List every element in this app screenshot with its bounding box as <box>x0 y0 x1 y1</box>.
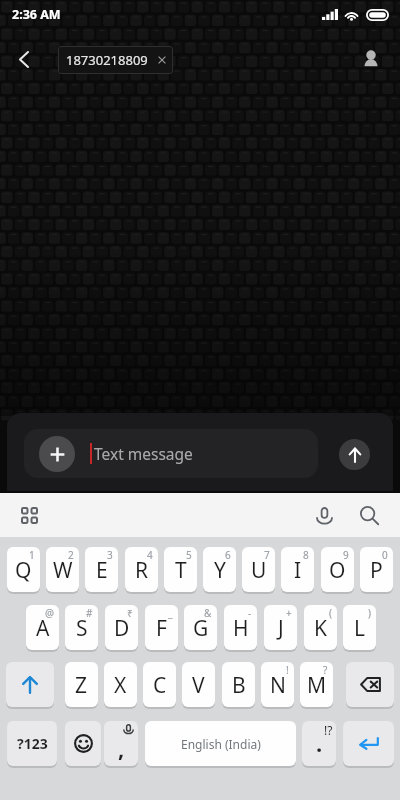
button[interactable]: H <box>224 605 257 650</box>
button[interactable]: ?123 <box>7 721 57 766</box>
staticText: X <box>114 671 127 700</box>
staticText: # <box>86 606 93 620</box>
staticText: N <box>270 671 286 700</box>
button[interactable]: E <box>85 547 118 592</box>
staticText: , <box>118 733 125 763</box>
staticText: ( <box>329 606 332 620</box>
staticText: @ <box>45 606 54 620</box>
button[interactable] <box>65 721 101 766</box>
other: Emoji <box>65 721 101 768</box>
staticText: !? <box>324 722 333 738</box>
staticText: F <box>156 614 167 643</box>
staticText: ) <box>368 606 371 620</box>
button[interactable]: L <box>343 605 376 650</box>
button[interactable]: P <box>360 547 393 592</box>
button[interactable]: F <box>145 605 178 650</box>
button[interactable]: I <box>281 547 314 592</box>
staticText: 5 <box>186 548 192 562</box>
staticText: I <box>294 556 302 585</box>
staticText: S <box>76 614 88 643</box>
staticText: 7 <box>264 548 270 562</box>
staticText: ! <box>286 663 289 677</box>
staticText: M <box>307 671 327 700</box>
button[interactable]: K <box>304 605 337 650</box>
staticText: . <box>316 728 323 758</box>
button[interactable]: O <box>321 547 354 592</box>
staticText: 2:36 AM <box>12 6 61 23</box>
button[interactable]: , <box>104 721 138 766</box>
button[interactable] <box>6 662 54 707</box>
button[interactable]: S <box>65 605 98 650</box>
staticText: K <box>314 614 327 643</box>
button[interactable]: B <box>222 662 255 707</box>
button[interactable]: R <box>125 547 158 592</box>
staticText: G <box>193 614 209 643</box>
button[interactable]: 18730218809 <box>58 46 173 74</box>
staticText: 18730218809 <box>66 51 148 69</box>
staticText: A <box>36 614 50 643</box>
staticText: ?123 <box>17 734 48 753</box>
button[interactable]: Contact details <box>353 41 389 77</box>
staticText: P <box>370 556 383 585</box>
staticText: English (India) <box>181 736 261 752</box>
staticText: ₹ <box>127 606 133 620</box>
button[interactable]: Search <box>352 498 386 532</box>
staticText: 1 <box>29 548 35 562</box>
button[interactable]: C <box>143 662 176 707</box>
button[interactable]: X <box>104 662 137 707</box>
staticText: 2 <box>68 548 74 562</box>
button[interactable]: J <box>264 605 297 650</box>
button[interactable]: D <box>105 605 138 650</box>
staticText: Q <box>15 556 32 585</box>
staticText: L <box>354 614 366 643</box>
button[interactable]: Back <box>5 41 42 78</box>
button[interactable]: Add attachment <box>24 429 318 478</box>
button[interactable]: M <box>300 662 333 707</box>
staticText: C <box>153 671 167 700</box>
staticText: O <box>329 556 346 585</box>
button[interactable]: G <box>184 605 217 650</box>
button[interactable]: Q <box>7 547 40 592</box>
button[interactable]: Voice input <box>307 498 341 532</box>
other: Shift <box>6 662 54 709</box>
button[interactable]: Y <box>203 547 236 592</box>
button[interactable]: W <box>46 547 79 592</box>
staticText: Text message <box>94 443 193 464</box>
other: Enter <box>343 721 394 768</box>
button[interactable]: Open apps <box>14 500 44 530</box>
button[interactable]: V <box>182 662 215 707</box>
button[interactable]: U <box>242 547 275 592</box>
staticText: & <box>204 606 212 620</box>
staticText: Y <box>214 556 226 585</box>
staticText: 0 <box>382 548 388 562</box>
button[interactable]: Z <box>65 662 98 707</box>
staticText: 9 <box>343 548 349 562</box>
button[interactable]: A <box>26 605 59 650</box>
button[interactable] <box>343 721 394 766</box>
staticText: + <box>286 606 292 620</box>
button[interactable]: Add attachment <box>39 436 75 472</box>
button[interactable] <box>346 662 394 707</box>
staticText: - <box>248 606 252 620</box>
button[interactable]: T <box>164 547 197 592</box>
staticText: T <box>175 556 187 585</box>
staticText: B <box>232 671 246 700</box>
button[interactable]: N <box>261 662 294 707</box>
staticText: J <box>278 614 284 643</box>
staticText: _ <box>168 606 173 620</box>
staticText: D <box>114 614 130 643</box>
staticText: 8 <box>303 548 309 562</box>
staticText: 3 <box>107 548 113 562</box>
button[interactable]: . <box>302 721 336 766</box>
staticText: H <box>233 614 249 643</box>
staticText: 6 <box>225 548 231 562</box>
button[interactable]: English (India) <box>145 721 296 766</box>
staticText: 4 <box>147 548 153 562</box>
staticText: E <box>96 556 108 585</box>
button[interactable]: Send message <box>339 439 370 470</box>
other: Backspace <box>346 662 394 709</box>
staticText: R <box>135 556 149 585</box>
staticText: V <box>192 671 205 700</box>
staticText: W <box>53 556 73 585</box>
staticText: ? <box>323 663 328 677</box>
